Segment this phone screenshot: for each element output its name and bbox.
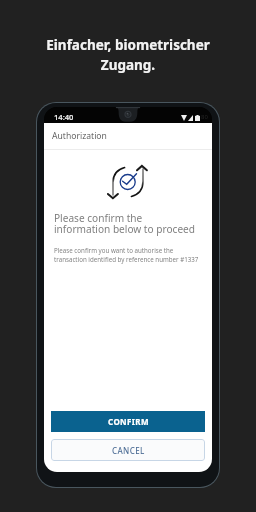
button[interactable]: Authorization <box>44 123 212 149</box>
staticText: 14:40 <box>54 112 74 122</box>
staticText: 80 <box>201 113 208 121</box>
staticText: CONFIRM <box>108 416 149 427</box>
staticText: Please confirm the information below to … <box>54 211 210 236</box>
button[interactable]: CONFIRM <box>51 411 205 432</box>
button[interactable]: CANCEL <box>51 439 205 461</box>
staticText: Please confirm you want to authorise the… <box>54 246 210 264</box>
staticText: Einfacher, biometrischer Zugang. <box>0 36 256 74</box>
staticText: CANCEL <box>112 445 145 456</box>
staticText: Authorization <box>52 130 107 142</box>
